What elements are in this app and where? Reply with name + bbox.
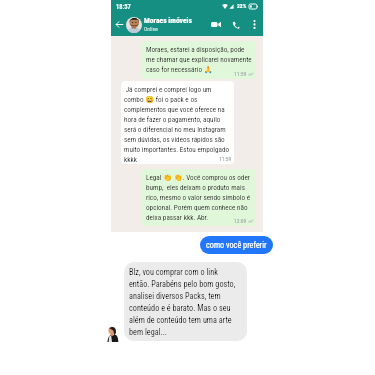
staticText: Legal 👏 👏. Você comprou os oder bump, el… — [146, 173, 254, 221]
staticText: 22% — [237, 3, 247, 10]
staticText: Blz, vou comprar com o link então. Parab… — [129, 267, 240, 337]
staticText: 11:59 — [234, 71, 247, 77]
button[interactable]: Video call — [207, 17, 225, 32]
staticText: 12:09 — [234, 218, 247, 224]
staticText: Online — [144, 26, 158, 33]
staticText: Moraes, estarei a disposição, pode me ch… — [146, 45, 254, 73]
button[interactable]: como você preferir — [200, 236, 273, 254]
button[interactable]: Back — [112, 17, 127, 32]
staticText: 11:59 — [219, 156, 232, 162]
staticText: Moraes imóveis — [144, 16, 192, 25]
staticText: Já comprei e comprei logo um combo 😄 foi… — [124, 85, 232, 163]
staticText: como você preferir — [206, 240, 267, 250]
staticText: 18:57 — [116, 3, 131, 11]
button[interactable]: Call — [228, 17, 244, 32]
button[interactable]: More options — [247, 17, 261, 32]
